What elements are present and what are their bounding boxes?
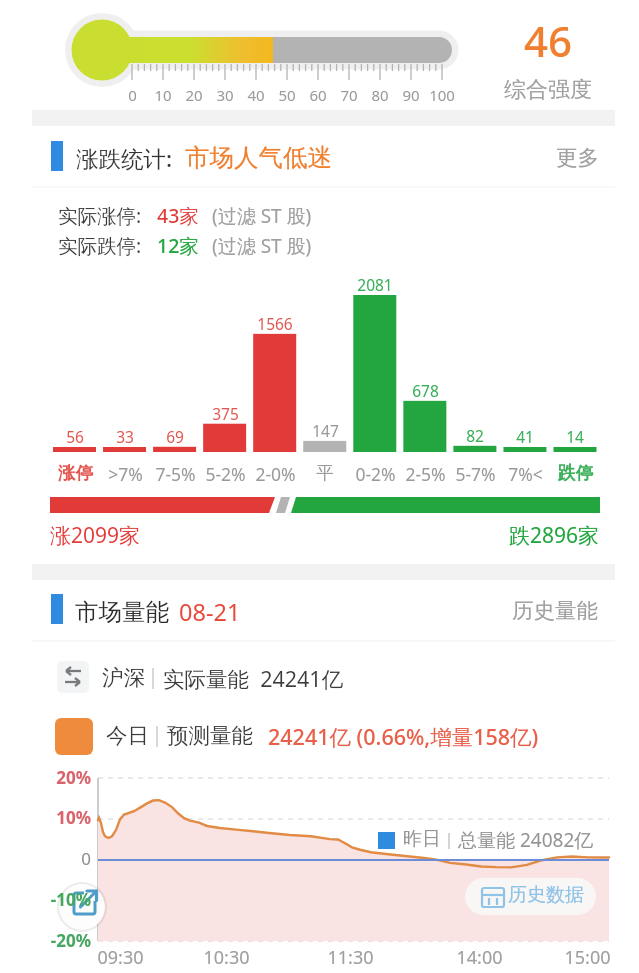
staticText: 涨停	[58, 462, 93, 484]
button[interactable]: 分享	[58, 883, 106, 931]
staticText: 43家	[157, 202, 199, 229]
staticText: 5-2%	[205, 462, 246, 486]
staticText: 2-0%	[255, 462, 296, 486]
button[interactable]: 切换市场	[57, 661, 89, 693]
staticText: 30	[216, 85, 234, 105]
staticText: 2081	[357, 274, 393, 295]
button[interactable]	[465, 878, 596, 915]
staticText: 20%	[56, 766, 91, 789]
staticText: (过滤 ST 股)	[212, 203, 312, 229]
staticText: 跌2896家	[509, 521, 600, 550]
staticText: 昨日	[403, 827, 441, 851]
staticText: 平	[316, 462, 334, 484]
staticText: 33	[116, 426, 134, 447]
staticText: 实际跌停:	[58, 232, 142, 259]
staticText: 总量能 24082亿	[458, 827, 594, 853]
staticText: 历史数据	[508, 883, 584, 907]
staticText: 10:30	[203, 945, 250, 970]
staticText: 综合强度	[504, 76, 592, 104]
staticText: 12家	[157, 232, 199, 259]
staticText: 20	[185, 85, 203, 105]
staticText: 市场人气低迷	[185, 142, 332, 173]
staticText: 0-2%	[355, 462, 396, 486]
staticText: 涨2099家	[50, 521, 141, 550]
staticText: 46	[524, 12, 573, 69]
staticText: 147	[312, 420, 339, 441]
staticText: 10	[154, 85, 172, 105]
staticText: 40	[247, 85, 265, 105]
staticText: 90	[402, 85, 420, 105]
staticText: (过滤 ST 股)	[212, 233, 312, 259]
staticText: 更多	[556, 144, 599, 171]
button[interactable]	[551, 138, 611, 174]
staticText: 7%<	[508, 462, 543, 486]
staticText: 预测量能	[167, 722, 253, 749]
staticText: >7%	[108, 462, 143, 486]
button[interactable]	[508, 592, 603, 628]
staticText: 沪深	[102, 664, 145, 691]
staticText: 82	[466, 425, 484, 446]
staticText: -20%	[50, 929, 91, 952]
staticText: 41	[516, 426, 534, 447]
staticText: 历史量能	[512, 597, 598, 624]
staticText: 100	[429, 85, 455, 105]
staticText: 80	[371, 85, 389, 105]
staticText: 678	[412, 380, 439, 401]
staticText: 69	[166, 426, 184, 447]
staticText: 7-5%	[155, 462, 196, 486]
staticText: 市场量能	[75, 597, 169, 627]
staticText: 11:30	[327, 945, 374, 970]
staticText: -10%	[50, 888, 91, 911]
staticText: 56	[66, 426, 84, 447]
staticText: 15:00	[564, 945, 611, 970]
staticText: 跌停	[558, 462, 593, 484]
staticText: 375	[212, 403, 239, 424]
staticText: 实际量能 24241亿	[163, 664, 344, 693]
staticText: 1566	[257, 313, 293, 334]
staticText: 10%	[56, 806, 91, 829]
staticText: 0	[81, 847, 91, 870]
staticText: 实际涨停:	[58, 202, 142, 229]
staticText: 50	[278, 85, 296, 105]
staticText: 0	[128, 85, 137, 105]
staticText: 60	[309, 85, 327, 105]
staticText: 09:30	[97, 945, 144, 970]
staticText: 14	[566, 426, 584, 447]
staticText: 今日	[106, 722, 149, 749]
staticText: 24241亿 (0.66%,增量158亿)	[268, 722, 539, 751]
staticText: 08-21	[179, 596, 241, 628]
staticText: 70	[340, 85, 358, 105]
staticText: 涨跌统计:	[76, 143, 173, 174]
staticText: 5-7%	[455, 462, 496, 486]
staticText: 2-5%	[405, 462, 446, 486]
staticText: 14:00	[456, 945, 503, 970]
